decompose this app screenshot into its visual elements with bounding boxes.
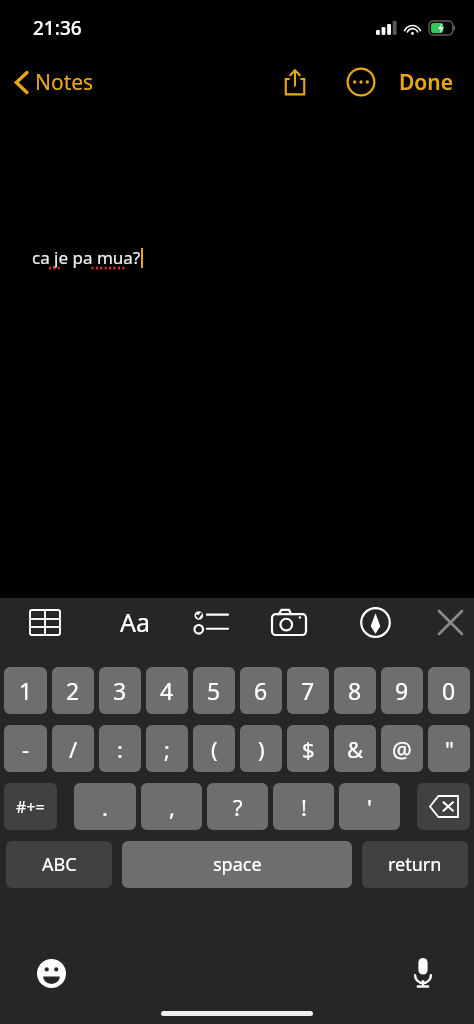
staticText: @ <box>392 734 412 764</box>
button[interactable]: space <box>122 841 352 888</box>
button[interactable]: - <box>4 725 47 772</box>
staticText: #+= <box>16 796 45 818</box>
button[interactable]: , <box>141 783 202 830</box>
button[interactable]: $ <box>287 725 329 772</box>
staticText: Aa <box>120 605 151 639</box>
button[interactable]: ! <box>273 783 334 830</box>
button[interactable]: 3 <box>99 667 141 714</box>
button[interactable]: Camera <box>265 598 313 646</box>
button[interactable]: 8 <box>334 667 376 714</box>
button[interactable]: Share <box>273 60 317 104</box>
staticText: ca je pa mua? <box>32 246 141 269</box>
staticText: & <box>347 734 364 764</box>
button[interactable]: ; <box>146 725 188 772</box>
button[interactable]: " <box>428 725 470 772</box>
staticText: 8 <box>348 675 362 706</box>
button[interactable]: & <box>334 725 376 772</box>
button[interactable]: #+= <box>4 783 57 830</box>
button[interactable]: 6 <box>240 667 282 714</box>
button[interactable]: ' <box>339 783 400 830</box>
button[interactable]: Dictation <box>402 952 444 994</box>
button[interactable]: Notes <box>10 64 99 101</box>
staticText: , <box>169 792 175 822</box>
staticText: 7 <box>301 675 315 706</box>
staticText: 9 <box>395 675 409 706</box>
staticText: 3 <box>113 675 127 706</box>
button[interactable]: 4 <box>146 667 188 714</box>
button[interactable]: Done <box>395 62 458 103</box>
staticText: " <box>445 734 454 764</box>
staticText: $ <box>302 734 315 764</box>
button[interactable]: Table <box>22 599 68 645</box>
button[interactable]: 7 <box>287 667 329 714</box>
button[interactable]: @ <box>381 725 423 772</box>
button[interactable]: : <box>99 725 141 772</box>
button[interactable]: ? <box>207 783 268 830</box>
button[interactable]: . <box>74 783 136 830</box>
staticText: / <box>69 734 78 764</box>
button[interactable]: Close keyboard <box>426 598 474 646</box>
staticText: ) <box>258 734 265 764</box>
button[interactable]: Checklist <box>187 598 235 646</box>
button[interactable]: 0 <box>428 667 470 714</box>
button[interactable]: More options <box>339 60 383 104</box>
button[interactable]: ) <box>240 725 282 772</box>
button[interactable]: Backspace <box>417 783 470 830</box>
staticText: space <box>213 852 262 877</box>
staticText: 1 <box>19 675 33 706</box>
button[interactable]: return <box>362 841 468 888</box>
staticText: 0 <box>442 675 456 706</box>
button[interactable]: Text format <box>111 598 159 646</box>
staticText: ; <box>164 734 170 764</box>
button[interactable]: ( <box>193 725 235 772</box>
staticText: : <box>117 734 123 764</box>
button[interactable]: 5 <box>193 667 235 714</box>
staticText: Done <box>399 68 454 97</box>
button[interactable]: Markup <box>351 598 399 646</box>
staticText: . <box>102 792 108 822</box>
staticText: 5 <box>207 675 221 706</box>
staticText: 21:36 <box>33 15 82 41</box>
staticText: ABC <box>42 852 77 877</box>
staticText: ? <box>233 792 243 822</box>
staticText: ( <box>211 734 218 764</box>
staticText: Notes <box>35 68 94 97</box>
button[interactable]: 1 <box>4 667 47 714</box>
staticText: ' <box>367 792 372 822</box>
button[interactable]: 2 <box>52 667 94 714</box>
staticText: return <box>388 852 442 877</box>
button[interactable]: 9 <box>381 667 423 714</box>
button[interactable]: / <box>52 725 94 772</box>
staticText: 2 <box>66 675 80 706</box>
staticText: ! <box>301 792 307 822</box>
staticText: 4 <box>160 675 174 706</box>
button[interactable]: Emoji <box>30 952 72 994</box>
staticText: - <box>22 734 30 764</box>
button[interactable]: ABC <box>6 841 112 888</box>
staticText: 6 <box>254 675 268 706</box>
